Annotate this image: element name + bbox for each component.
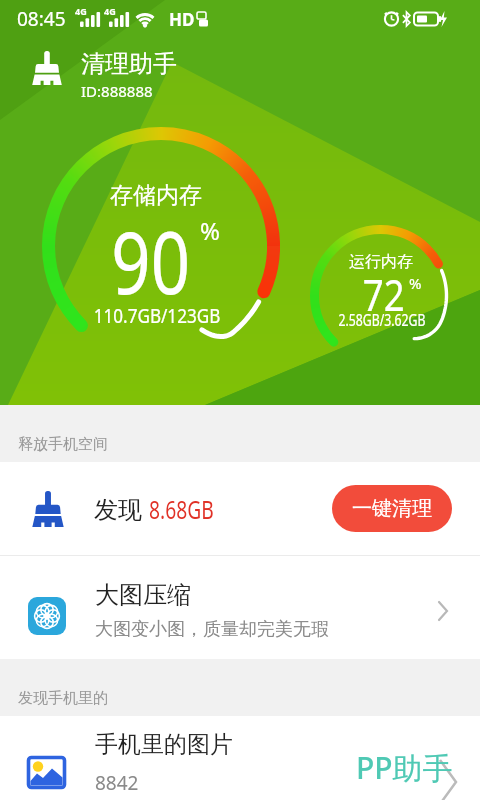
staticText: 08:45 [17,6,66,32]
staticText: 大图压缩 [95,580,191,610]
button[interactable]: 手机里的图片 [0,716,480,800]
staticText: 发现 [94,492,149,525]
staticText: 清理助手 [81,49,177,79]
button[interactable]: 大图压缩 [0,556,480,659]
staticText: % [409,273,422,293]
staticText: 释放手机空间 [18,435,108,454]
button[interactable]: 一键清理 [332,485,452,532]
staticText: HD [169,8,195,31]
staticText: 手机里的图片 [95,730,233,759]
staticText: 运行内存 [321,252,441,272]
staticText: 90 [111,203,191,319]
staticText: 大图变小图，质量却完美无瑕 [95,618,329,641]
staticText: 8842 [95,770,139,796]
staticText: 72 [363,265,405,324]
button[interactable]: 发现 [0,462,480,555]
staticText: 一键清理 [352,496,432,521]
staticText: 110.7GB/123GB [12,303,302,329]
staticText: 8.68GB [149,491,214,526]
staticText: 2.58GB/3.62GB [332,308,432,331]
staticText: 4G [104,5,116,17]
staticText: % [200,214,220,247]
staticText: 存储内存 [0,181,317,210]
staticText: 发现手机里的 [18,689,108,708]
staticText: PP助手 [356,747,453,788]
staticText: 4G [75,5,87,17]
staticText: ID:888888 [81,81,153,101]
